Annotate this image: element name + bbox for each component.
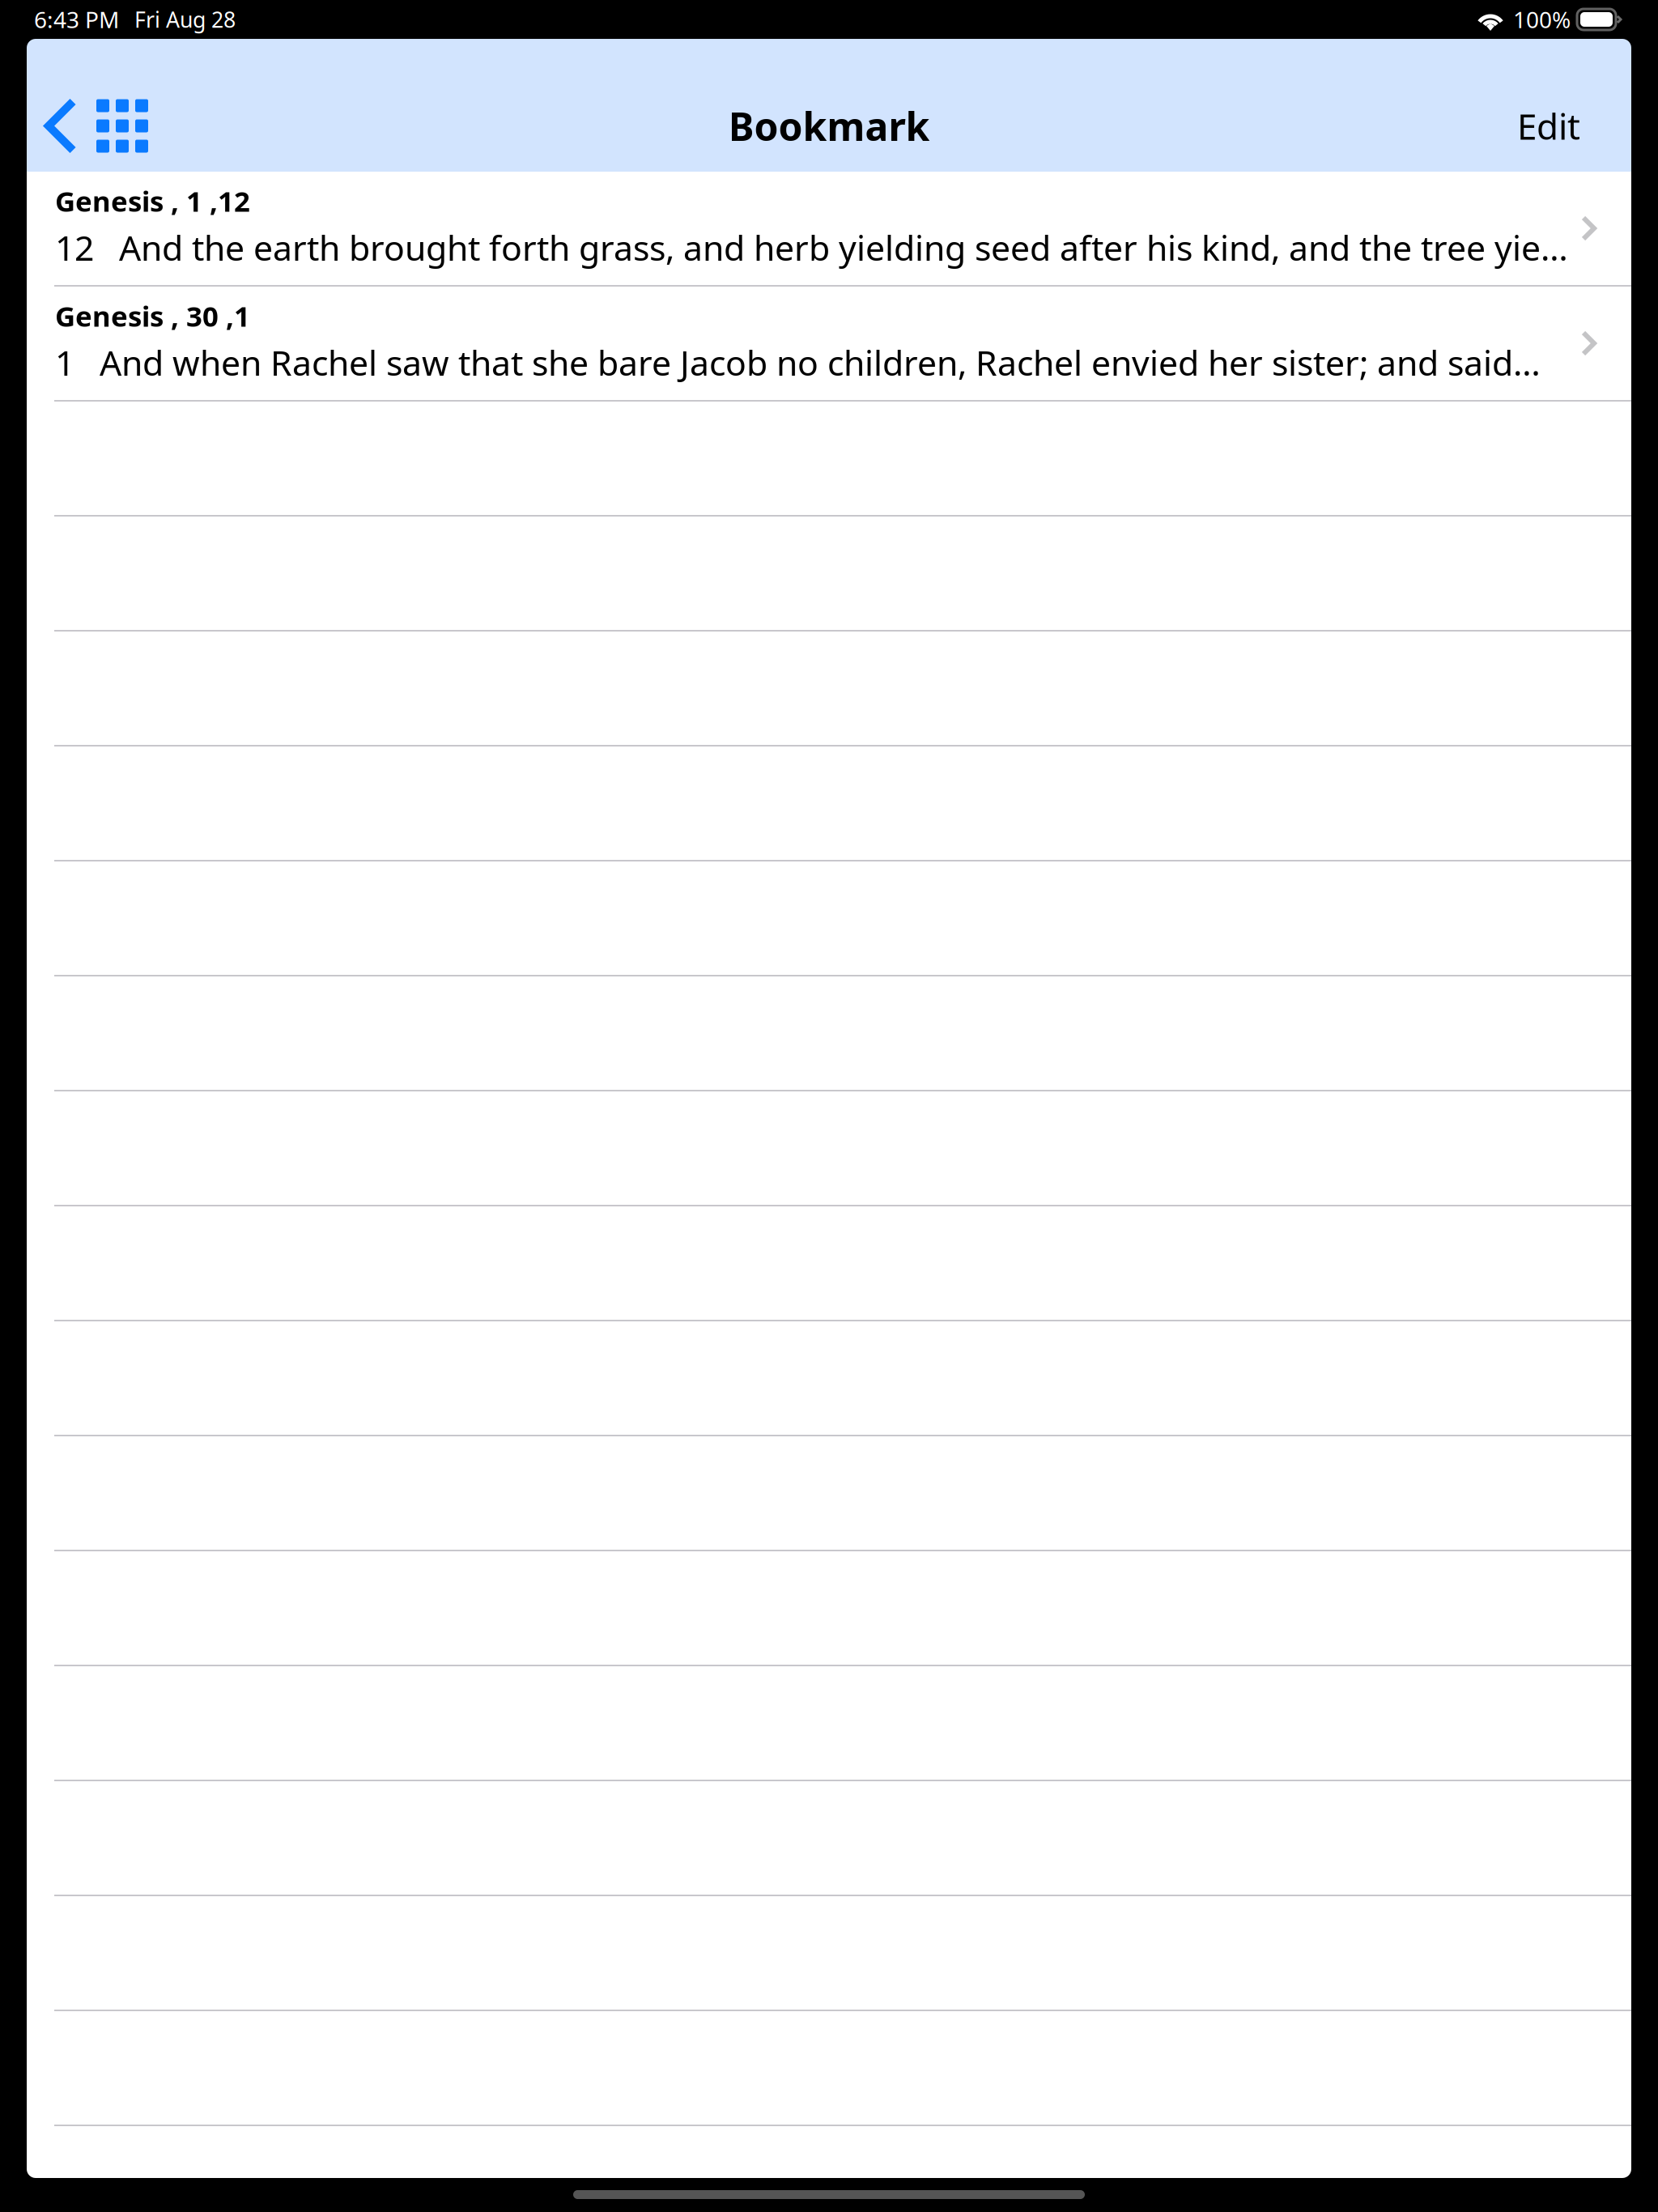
staticText: 100%: [1513, 4, 1571, 34]
staticText: Bookmark: [728, 100, 930, 152]
staticText: Edit: [1517, 102, 1580, 150]
button[interactable]: Back to chapter grid: [27, 80, 172, 172]
button[interactable]: Edit: [1485, 80, 1631, 172]
staticText: 6:43 PM: [34, 4, 119, 34]
staticText: Genesis , 30 ,1: [55, 297, 250, 334]
staticText: Genesis , 1 ,12: [55, 182, 250, 219]
button[interactable]: Genesis , 1 ,12: [23, 172, 1635, 285]
staticText: 1: [55, 339, 74, 385]
staticText: 12: [55, 224, 94, 270]
button[interactable]: Genesis , 30 ,1: [23, 287, 1635, 400]
staticText: And the earth brought forth grass, and h…: [119, 224, 1568, 270]
staticText: And when Rachel saw that she bare Jacob …: [100, 339, 1541, 385]
staticText: Fri Aug 28: [134, 5, 236, 34]
